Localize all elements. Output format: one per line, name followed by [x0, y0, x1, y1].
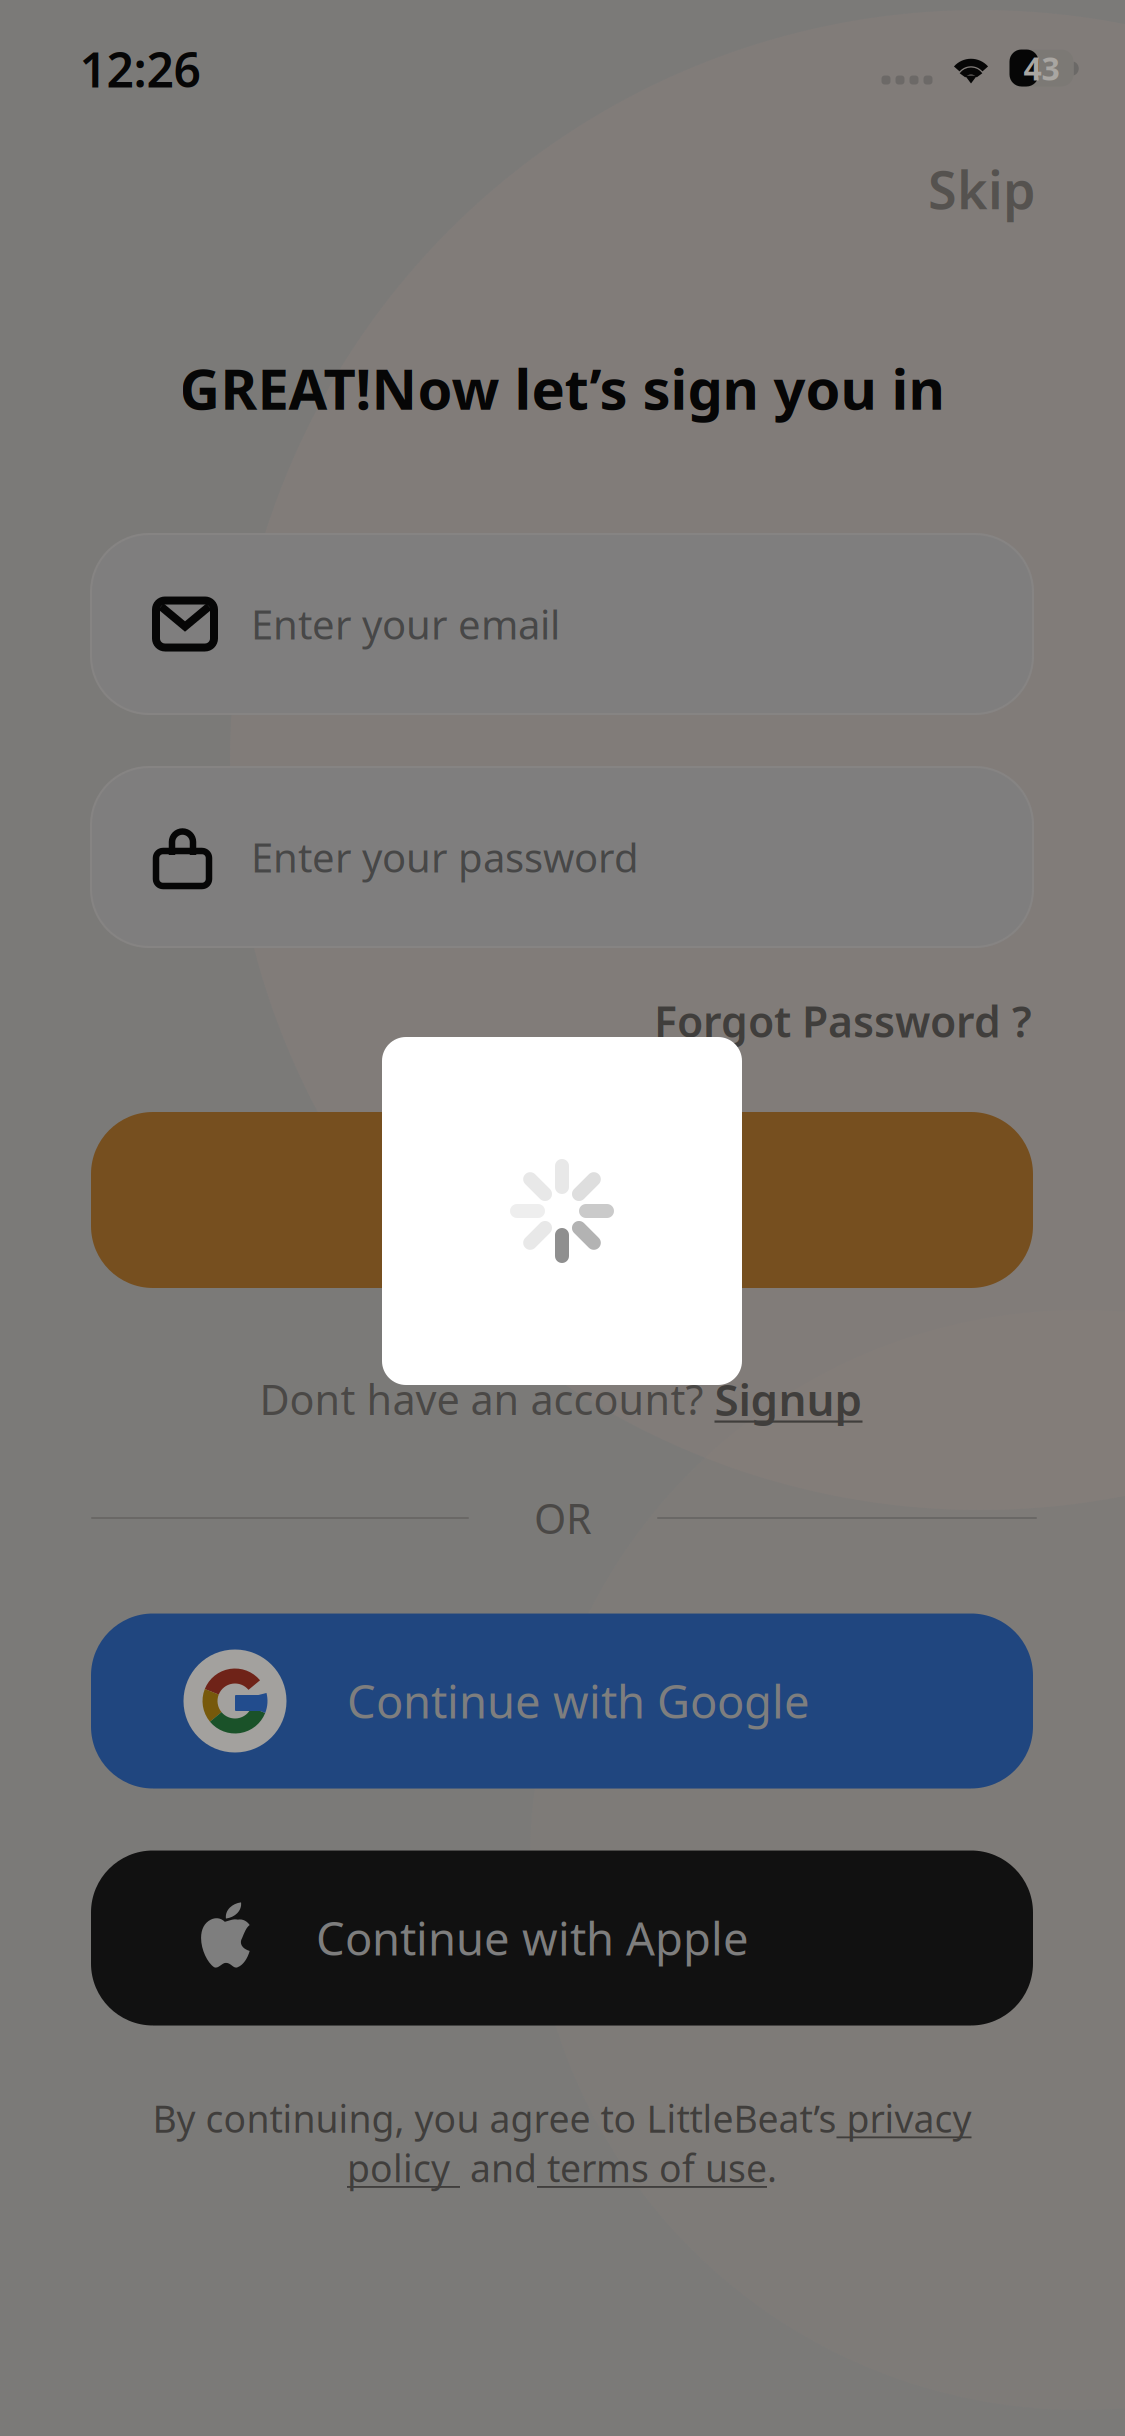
button[interactable]: Signup [714, 1370, 862, 1428]
staticText: Continue with Google [347, 1671, 810, 1731]
staticText: Dont have an account? [259, 1372, 714, 1426]
staticText: and [460, 2143, 537, 2193]
staticText: Enter your email [251, 597, 560, 650]
staticText: Signup [714, 1370, 862, 1428]
staticText: By continuing, you agree to LittleBeat’s [152, 2093, 836, 2143]
button[interactable]: privacy [836, 2093, 971, 2143]
staticText: 12:26 [79, 37, 200, 101]
button[interactable]: Sign In [91, 1112, 1033, 1288]
button[interactable]: Continue with Google [91, 1613, 1033, 1788]
staticText: policy [347, 2143, 460, 2193]
staticText: Continue with Apple [316, 1908, 749, 1968]
button[interactable]: Continue with Apple [91, 1850, 1033, 2025]
staticText: privacy [836, 2093, 971, 2143]
staticText: OR [534, 1491, 592, 1545]
staticText: Sign In [481, 1168, 643, 1232]
button[interactable]: policy [347, 2143, 460, 2193]
button[interactable]: Forgot Password ? [652, 983, 1034, 1059]
staticText: . [767, 2143, 777, 2193]
button[interactable]: terms of use [537, 2143, 767, 2193]
staticText: Forgot Password ? [654, 993, 1032, 1049]
staticText: terms of use [537, 2143, 767, 2193]
button[interactable]: Enter your email [91, 534, 1033, 714]
staticText: Enter your password [251, 830, 639, 883]
staticText: GREAT!Now let’s sign you in [179, 351, 944, 425]
staticText: Skip [928, 154, 1036, 224]
button[interactable]: Enter your password [91, 767, 1033, 947]
button[interactable]: Skip [904, 136, 1060, 242]
staticText: 43 [1023, 47, 1059, 89]
